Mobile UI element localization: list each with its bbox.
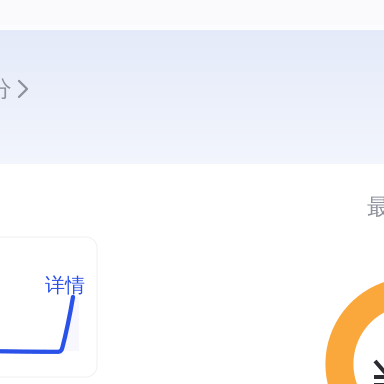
- staticText: 详情: [45, 273, 85, 298]
- button[interactable]: 分: [0, 75, 29, 103]
- staticText: 分: [0, 75, 12, 103]
- staticText: 最: [367, 193, 384, 221]
- button[interactable]: 详情: [0, 237, 97, 377]
